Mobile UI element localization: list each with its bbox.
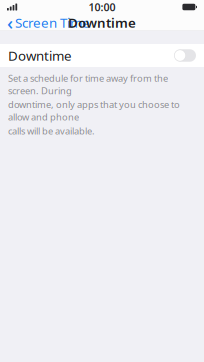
staticText: downtime, only apps that you choose to a…: [8, 98, 180, 123]
staticText: Downtime: [8, 47, 72, 64]
staticText: calls will be available.: [8, 125, 95, 137]
staticText: Set a schedule for time away from the sc…: [8, 72, 168, 97]
staticText: Screen Time: [15, 14, 90, 31]
staticText: 10:00: [88, 0, 115, 14]
staticText: ‹: [7, 10, 13, 35]
button[interactable]: ‹: [0, 14, 97, 31]
button[interactable]: Downtime: [0, 44, 204, 67]
staticText: Downtime: [68, 14, 136, 31]
